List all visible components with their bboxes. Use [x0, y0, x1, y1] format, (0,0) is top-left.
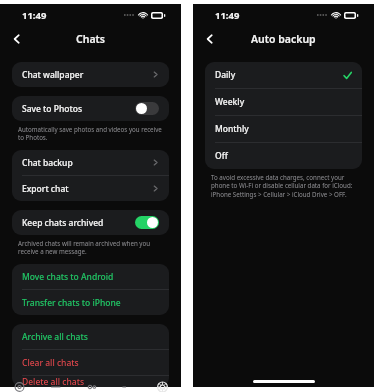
button[interactable]: Transfer chats to iPhone [12, 290, 169, 315]
staticText: Save to Photos [22, 103, 135, 115]
button[interactable]: Export chat [12, 176, 169, 201]
staticText: Automatically save photos and videos you… [18, 125, 163, 141]
button[interactable]: Back [199, 28, 221, 50]
staticText: Clear all chats [22, 357, 159, 369]
staticText: Archive all chats [22, 331, 159, 343]
staticText: Daily [215, 69, 343, 81]
staticText: 11:49 [22, 9, 47, 22]
button[interactable]: Daily [205, 62, 362, 88]
staticText: Auto backup [251, 32, 316, 46]
button[interactable]: Off [205, 143, 362, 169]
button[interactable]: Archive all chats [12, 324, 169, 349]
button[interactable]: Chat wallpaper [12, 62, 169, 87]
staticText: Chat wallpaper [22, 69, 152, 81]
button[interactable]: Clear all chats [12, 350, 169, 375]
staticText: Weekly [215, 96, 352, 108]
button[interactable]: Move chats to Android [12, 264, 169, 289]
staticText: Monthly [215, 123, 352, 135]
button[interactable]: Save to Photos [12, 96, 169, 121]
button[interactable]: Weekly [205, 89, 362, 115]
staticText: Chat backup [22, 157, 152, 169]
button[interactable]: Monthly [205, 116, 362, 142]
button[interactable]: Back [6, 28, 28, 50]
staticText: Transfer chats to iPhone [22, 297, 159, 309]
button[interactable]: Delete all chats [12, 376, 169, 387]
button[interactable]: Keep chats archived [12, 210, 169, 235]
button[interactable] [135, 102, 159, 115]
button[interactable] [135, 216, 159, 229]
staticText: Export chat [22, 183, 152, 195]
staticText: Delete all chats [22, 376, 159, 387]
staticText: Chats [76, 32, 105, 46]
staticText: Off [215, 150, 352, 162]
staticText: To avoid excessive data charges, connect… [211, 173, 356, 198]
staticText: 11:49 [215, 9, 240, 22]
staticText: Keep chats archived [22, 217, 135, 229]
button[interactable]: Chat backup [12, 150, 169, 175]
staticText: Archived chats will remain archived when… [18, 239, 163, 255]
staticText: Move chats to Android [22, 271, 159, 283]
